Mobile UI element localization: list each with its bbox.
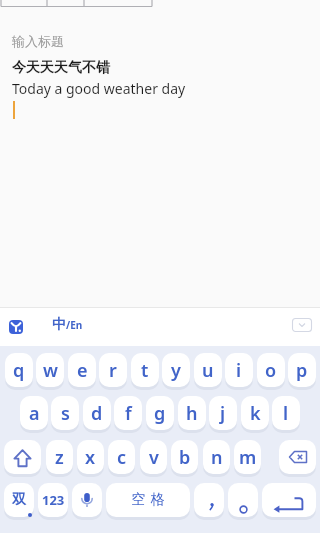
button[interactable] [228, 483, 258, 517]
staticText: 输入标题 [12, 33, 64, 49]
button[interactable] [72, 483, 102, 517]
staticText: l [283, 401, 289, 426]
button[interactable]: g [146, 396, 174, 430]
button[interactable]: w [36, 353, 64, 387]
staticText: t [141, 358, 149, 383]
button[interactable]: r [99, 353, 127, 387]
button[interactable]: e [68, 353, 96, 387]
staticText: n [211, 445, 223, 470]
staticText: y [171, 358, 181, 383]
button[interactable]: b [171, 440, 198, 474]
button[interactable]: i [225, 353, 253, 387]
button[interactable]: a [20, 396, 48, 430]
button[interactable]: o [257, 353, 285, 387]
staticText: 空格 [129, 491, 167, 509]
staticText: a [29, 401, 40, 426]
button[interactable] [4, 440, 41, 474]
button[interactable] [194, 483, 224, 517]
button[interactable]: l [272, 396, 300, 430]
button[interactable]: f [114, 396, 142, 430]
staticText: i [236, 358, 242, 383]
staticText: g [154, 401, 166, 426]
staticText: m [239, 445, 257, 470]
button[interactable] [262, 483, 316, 517]
button[interactable]: v [140, 440, 167, 474]
staticText: q [13, 358, 25, 383]
staticText: s [61, 401, 70, 426]
button[interactable]: x [77, 440, 104, 474]
staticText: w [43, 358, 58, 383]
button[interactable]: m [234, 440, 261, 474]
button[interactable]: j [209, 396, 237, 430]
staticText: k [250, 401, 261, 426]
button[interactable]: k [241, 396, 269, 430]
button[interactable]: p [288, 353, 316, 387]
button[interactable]: n [203, 440, 230, 474]
button[interactable]: 空格 [106, 483, 190, 517]
staticText: j [220, 401, 226, 426]
button[interactable] [292, 318, 312, 332]
staticText: b [179, 445, 191, 470]
staticText: o [265, 358, 277, 383]
staticText: 今天天天气不错 [12, 59, 110, 77]
button[interactable]: y [162, 353, 190, 387]
staticText: v [149, 445, 159, 470]
button[interactable]: c [108, 440, 135, 474]
button[interactable]: z [46, 440, 73, 474]
button[interactable]: s [51, 396, 79, 430]
button[interactable]: 123 [38, 483, 68, 517]
staticText: Today a good weather day [12, 79, 186, 98]
button[interactable]: 双 [4, 483, 34, 517]
staticText: 双 [12, 491, 26, 509]
button[interactable] [0, 8, 320, 307]
staticText: p [296, 358, 308, 383]
staticText: 123 [42, 491, 65, 509]
staticText: u [202, 358, 214, 383]
button[interactable]: d [83, 396, 111, 430]
staticText: x [85, 445, 96, 470]
staticText: r [109, 358, 117, 383]
staticText: d [91, 401, 103, 426]
button[interactable]: h [178, 396, 206, 430]
button[interactable] [279, 440, 316, 474]
staticText: z [55, 445, 64, 470]
button[interactable]: t [131, 353, 159, 387]
staticText: h [186, 401, 198, 426]
staticText: c [117, 445, 127, 470]
button[interactable]: u [194, 353, 222, 387]
staticText: 中/En [52, 316, 83, 334]
button[interactable]: q [5, 353, 33, 387]
button[interactable]: 中/En [52, 316, 83, 334]
staticText: e [77, 358, 88, 383]
button[interactable] [9, 320, 23, 334]
staticText: f [125, 401, 132, 426]
